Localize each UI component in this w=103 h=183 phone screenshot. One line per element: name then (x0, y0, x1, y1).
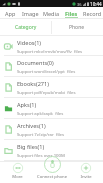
button[interactable]: App (0, 7, 20, 19)
staticText: 36 (77, 2, 82, 7)
button[interactable]: Files (61, 7, 82, 19)
button[interactable]: Documents(0) (0, 56, 103, 77)
button[interactable]: Videos(1) (0, 36, 103, 56)
staticText: Files (65, 10, 78, 17)
button[interactable]: More (0, 161, 35, 183)
button[interactable]: Archives(1) (0, 119, 103, 140)
staticText: 10:44 (90, 1, 102, 7)
button[interactable]: Connect phone (35, 161, 69, 183)
staticText: Support word/excel/ppt files (17, 68, 76, 74)
staticText: Image (22, 10, 39, 17)
staticText: Media (43, 10, 59, 17)
staticText: Big files(1) (17, 143, 45, 151)
button[interactable]: Invite (69, 161, 103, 183)
button[interactable]: Ebooks(271) (0, 77, 103, 98)
staticText: Connect phone (37, 174, 67, 180)
staticText: Documents(0) (17, 59, 54, 67)
button[interactable]: Category (0, 19, 51, 36)
button[interactable]: Apks(1) (0, 98, 103, 119)
button[interactable]: Big files(1) (0, 140, 103, 161)
staticText: Videos(1) (17, 39, 42, 47)
staticText: Category (15, 24, 37, 31)
button[interactable]: Image (20, 7, 40, 19)
staticText: Support files over 100M (17, 152, 65, 158)
staticText: More (12, 174, 23, 180)
staticText: Record (83, 10, 102, 17)
staticText: Support mkv/rmvb/mov/flv files (17, 48, 83, 54)
staticText: Apks(1) (17, 101, 37, 109)
button[interactable]: Record (82, 7, 103, 19)
staticText: Archives(1) (17, 122, 46, 130)
button[interactable]: Media (40, 7, 61, 19)
staticText: Support pdf/epub/mobi files (17, 89, 76, 95)
staticText: Ebooks(271) (17, 80, 49, 88)
staticText: App (5, 10, 16, 17)
staticText: Support 7z/zip/rar files (17, 131, 65, 137)
staticText: Phone (69, 24, 85, 31)
staticText: Invite (80, 174, 92, 180)
button[interactable]: Phone (51, 19, 103, 36)
staticText: Support apk/xapk files (17, 110, 64, 116)
